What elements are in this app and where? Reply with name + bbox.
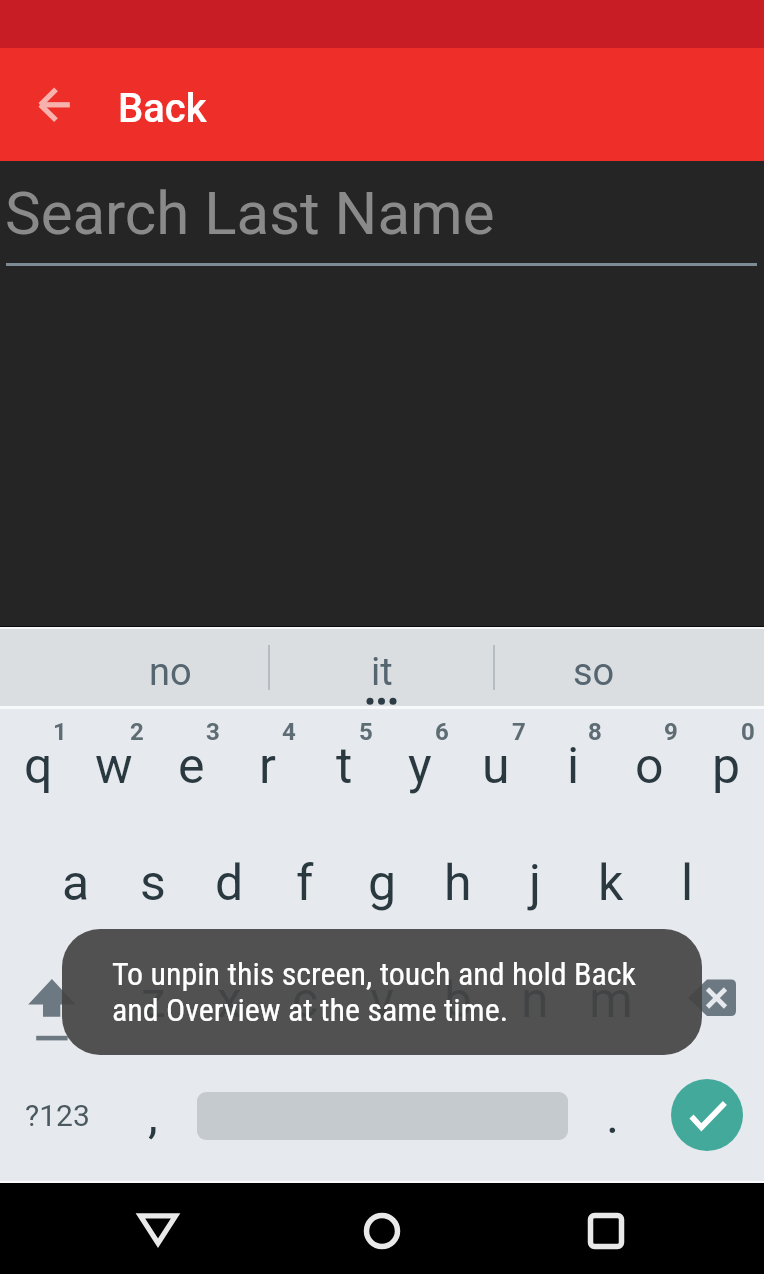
- staticText: ,: [148, 1086, 158, 1145]
- staticText: l: [681, 854, 694, 913]
- staticText: 3: [206, 718, 220, 746]
- button[interactable]: Delete: [688, 978, 738, 1018]
- button[interactable]: [0, 629, 269, 706]
- button[interactable]: ?123: [0, 1062, 112, 1174]
- staticText: k: [598, 854, 624, 913]
- staticText: s: [140, 854, 166, 913]
- staticText: no: [149, 650, 192, 695]
- staticText: p: [712, 737, 741, 796]
- button[interactable]: z: [115, 946, 191, 1056]
- staticText: so: [573, 650, 615, 695]
- staticText: i: [567, 737, 580, 796]
- button[interactable]: p: [688, 712, 764, 822]
- staticText: c: [292, 971, 319, 1030]
- button[interactable]: y: [382, 712, 458, 822]
- button[interactable]: Overview: [560, 1185, 651, 1274]
- staticText: u: [482, 737, 510, 796]
- button[interactable]: [0, 161, 764, 271]
- button[interactable]: w: [76, 712, 152, 822]
- staticText: and Overview at the same time.: [112, 991, 509, 1029]
- button[interactable]: m: [573, 946, 649, 1056]
- staticText: x: [217, 971, 242, 1030]
- button[interactable]: Home: [336, 1185, 427, 1274]
- button[interactable]: x: [191, 946, 267, 1056]
- button[interactable]: n: [497, 946, 573, 1056]
- button[interactable]: s: [115, 829, 191, 939]
- staticText: o: [635, 737, 664, 796]
- button[interactable]: u: [458, 712, 534, 822]
- staticText: 2: [130, 718, 144, 746]
- staticText: q: [24, 737, 53, 796]
- staticText: d: [215, 854, 244, 913]
- staticText: 5: [359, 718, 373, 746]
- button[interactable]: o: [611, 712, 687, 822]
- staticText: e: [178, 737, 205, 796]
- button[interactable]: Enter: [671, 1079, 743, 1151]
- staticText: b: [444, 971, 473, 1030]
- staticText: ?123: [25, 1098, 90, 1133]
- button[interactable]: [269, 629, 494, 706]
- staticText: z: [141, 971, 166, 1030]
- staticText: f: [296, 854, 314, 913]
- button[interactable]: .: [568, 1062, 653, 1174]
- staticText: r: [259, 737, 276, 796]
- staticText: Back: [118, 85, 207, 132]
- staticText: 9: [664, 718, 678, 746]
- button[interactable]: e: [153, 712, 229, 822]
- button[interactable]: l: [649, 829, 725, 939]
- staticText: .: [606, 1087, 620, 1146]
- button[interactable]: c: [267, 946, 343, 1056]
- button[interactable]: q: [0, 712, 76, 822]
- button[interactable]: g: [344, 829, 420, 939]
- button[interactable]: [494, 629, 764, 706]
- staticText: m: [589, 971, 633, 1030]
- staticText: 4: [282, 718, 296, 746]
- staticText: 1: [53, 718, 67, 746]
- staticText: t: [336, 737, 353, 796]
- button[interactable]: r: [229, 712, 305, 822]
- staticText: 7: [512, 718, 526, 746]
- button[interactable]: v: [344, 946, 420, 1056]
- button[interactable]: Back: [112, 1185, 203, 1274]
- staticText: a: [62, 854, 90, 913]
- button[interactable]: ,: [112, 1062, 197, 1174]
- staticText: To unpin this screen, touch and hold Bac…: [112, 955, 637, 993]
- button[interactable]: h: [420, 829, 496, 939]
- button[interactable]: i: [535, 712, 611, 822]
- staticText: h: [444, 854, 472, 913]
- staticText: n: [521, 971, 549, 1030]
- button[interactable]: a: [38, 829, 114, 939]
- button[interactable]: d: [191, 829, 267, 939]
- button[interactable]: t: [306, 712, 382, 822]
- button[interactable]: Shift: [0, 945, 115, 1061]
- staticText: v: [370, 971, 395, 1030]
- staticText: 6: [435, 718, 449, 746]
- staticText: j: [529, 854, 541, 913]
- staticText: 0: [741, 718, 755, 746]
- staticText: it: [371, 650, 393, 695]
- staticText: Search Last Name: [5, 178, 495, 248]
- button[interactable]: j: [497, 829, 573, 939]
- staticText: g: [368, 854, 397, 913]
- button[interactable]: b: [420, 946, 496, 1056]
- button[interactable]: k: [573, 829, 649, 939]
- staticText: w: [95, 737, 133, 796]
- button[interactable]: Navigate up: [14, 56, 110, 152]
- staticText: 8: [588, 718, 602, 746]
- staticText: y: [408, 737, 432, 796]
- button[interactable]: f: [267, 829, 343, 939]
